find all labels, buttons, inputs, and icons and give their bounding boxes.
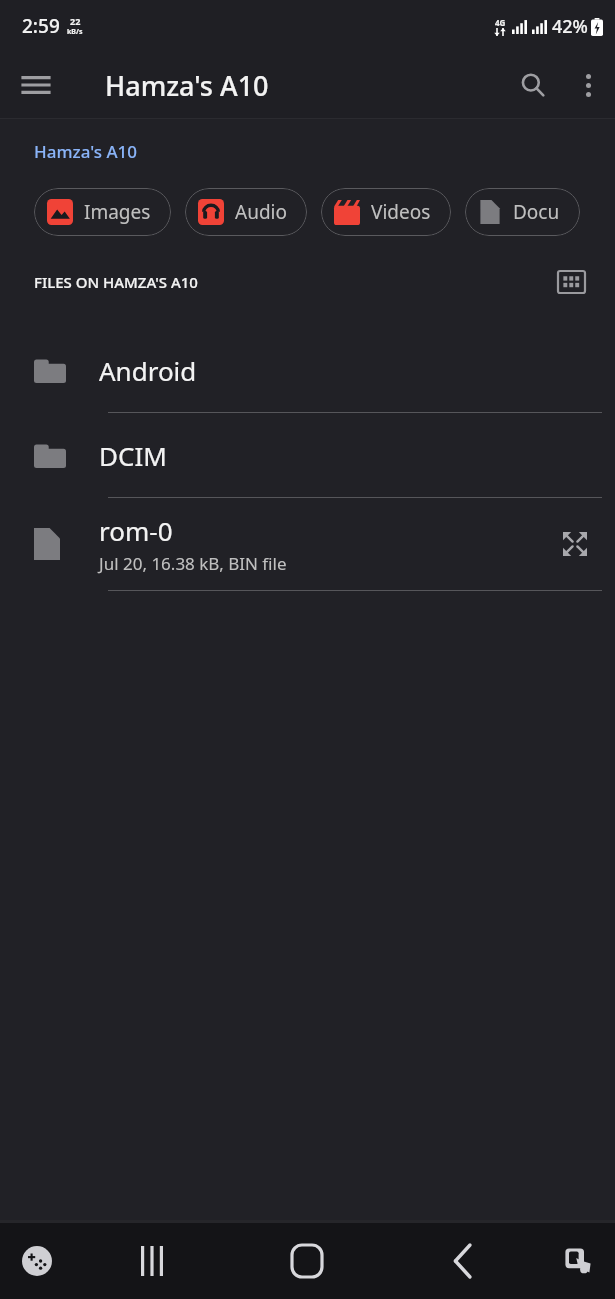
button[interactable]: Docu — [465, 188, 580, 236]
staticText: 42% — [552, 14, 588, 39]
button[interactable]: Android — [0, 328, 615, 413]
button[interactable]: Open navigation drawer — [10, 59, 62, 111]
button[interactable]: Audio — [185, 188, 307, 236]
button[interactable]: Game tools — [0, 1223, 74, 1299]
staticText: Hamza's A10 — [34, 140, 137, 163]
staticText: rom-0 — [99, 513, 173, 548]
button[interactable]: DCIM — [0, 413, 615, 498]
staticText: 22 — [70, 15, 81, 27]
staticText: Hamza's A10 — [105, 67, 269, 104]
staticText: FILES ON HAMZA'S A10 — [34, 272, 198, 292]
button[interactable]: Images — [34, 188, 171, 236]
button[interactable]: Videos — [321, 188, 451, 236]
staticText: Docu — [513, 199, 560, 225]
staticText: 4G — [495, 17, 506, 28]
staticText: Android — [99, 353, 197, 388]
staticText: 2:59 — [22, 13, 60, 39]
button[interactable]: Home — [229, 1223, 385, 1299]
button[interactable]: Switch to grid view — [549, 260, 593, 304]
button[interactable]: rom-0 — [0, 498, 615, 591]
staticText: Videos — [371, 199, 431, 225]
button[interactable]: More options — [561, 58, 615, 112]
staticText: kB/s — [67, 27, 83, 37]
button[interactable]: Search — [505, 57, 561, 113]
button[interactable]: Recent apps — [74, 1223, 229, 1299]
button[interactable]: Expand — [549, 518, 601, 570]
button[interactable]: Screenshot assistant — [541, 1223, 615, 1299]
staticText: Images — [84, 199, 151, 225]
staticText: Audio — [235, 199, 287, 225]
staticText: DCIM — [99, 438, 167, 473]
button[interactable]: Hamza's A10 — [24, 135, 147, 168]
button[interactable]: Back — [385, 1223, 541, 1299]
staticText: Jul 20, 16.38 kB, BIN file — [99, 552, 287, 575]
